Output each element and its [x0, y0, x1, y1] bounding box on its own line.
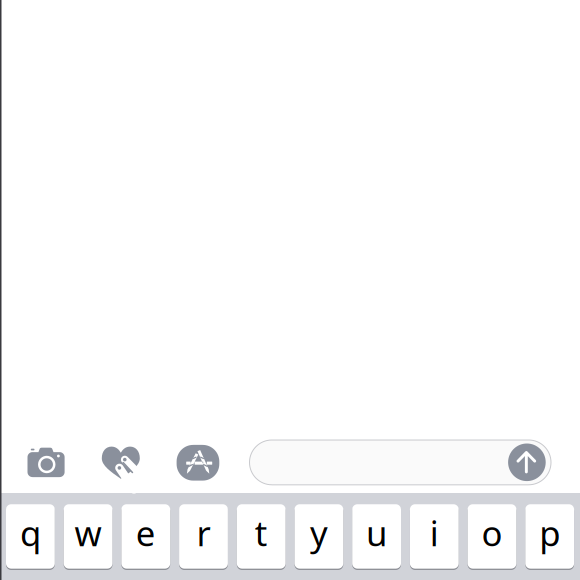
staticText: o [481, 510, 502, 556]
staticText: q [20, 510, 41, 556]
staticText: w [75, 510, 102, 556]
button[interactable]: u [352, 504, 401, 569]
staticText: i [430, 510, 439, 556]
button[interactable]: Camera [27, 447, 65, 477]
staticText: p [539, 510, 560, 556]
button[interactable]: r [179, 504, 228, 569]
button[interactable]: w [64, 504, 112, 569]
staticText: y [310, 510, 328, 556]
button[interactable]: p [525, 504, 574, 569]
button[interactable]: e [121, 504, 170, 569]
button[interactable]: Send [508, 443, 546, 481]
staticText: t [255, 510, 268, 556]
button[interactable]: y [294, 504, 343, 569]
staticText: r [196, 510, 210, 556]
button[interactable]: Apps [177, 445, 219, 481]
button[interactable]: o [468, 504, 516, 569]
button[interactable]: t [237, 504, 286, 569]
button[interactable]: Digital Touch [102, 446, 140, 479]
staticText: u [366, 510, 387, 556]
button[interactable]: q [6, 504, 55, 569]
button[interactable]: i [410, 504, 459, 569]
staticText: e [136, 510, 156, 556]
